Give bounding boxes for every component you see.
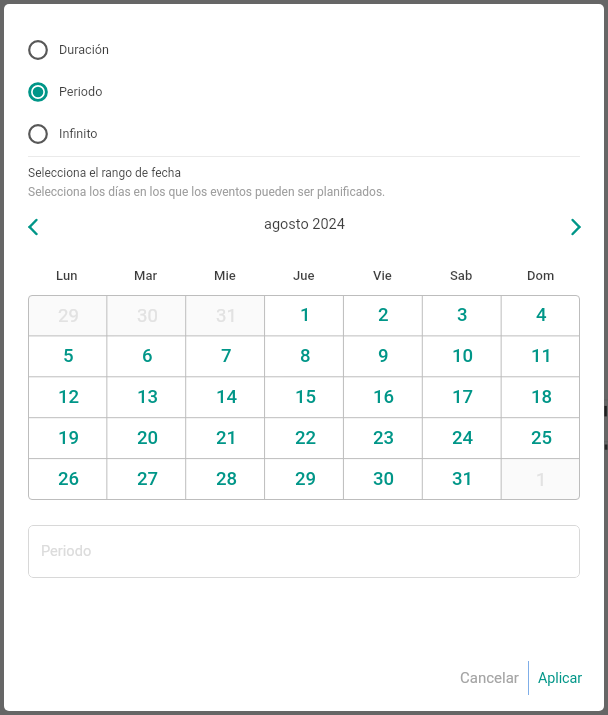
staticText: 14	[216, 386, 238, 408]
staticText: Selecciona los días en los que los event…	[28, 185, 386, 199]
staticText: 28	[216, 468, 238, 490]
staticText: 26	[58, 468, 80, 490]
staticText: 22	[295, 427, 317, 449]
button[interactable]: 15	[265, 377, 344, 418]
button[interactable]: 14	[186, 377, 265, 418]
button[interactable]: Aplicar	[529, 662, 592, 695]
button[interactable]: Mes siguiente	[562, 213, 590, 241]
button[interactable]: 23	[343, 418, 422, 459]
button[interactable]: 25	[501, 418, 580, 459]
button[interactable]: 31	[186, 295, 265, 336]
staticText: Duración	[59, 42, 109, 57]
staticText: Infinito	[59, 126, 98, 141]
button[interactable]: 28	[186, 459, 265, 500]
button[interactable]: 11	[501, 336, 580, 377]
staticText: Periodo	[41, 542, 92, 559]
staticText: 24	[452, 427, 474, 449]
staticText: 29	[58, 305, 79, 327]
staticText: 31	[452, 468, 474, 490]
staticText: Sab	[450, 268, 473, 283]
staticText: 4	[536, 304, 547, 326]
staticText: Periodo	[59, 84, 103, 99]
staticText: 3	[457, 304, 468, 326]
staticText: 23	[373, 427, 395, 449]
button[interactable]: 30	[107, 295, 186, 336]
button[interactable]: 12	[28, 377, 107, 418]
staticText: 31	[216, 305, 237, 327]
staticText: Jue	[293, 268, 315, 283]
button[interactable]: 8	[265, 336, 344, 377]
button[interactable]: 24	[422, 418, 501, 459]
staticText: Lun	[56, 268, 78, 283]
button[interactable]: 16	[343, 377, 422, 418]
button[interactable]: 17	[422, 377, 501, 418]
button[interactable]: 5	[28, 336, 107, 377]
button[interactable]: 4	[501, 295, 580, 336]
staticText: 8	[300, 345, 311, 367]
staticText: 15	[295, 386, 317, 408]
staticText: Cancelar	[460, 669, 519, 687]
button[interactable]: 1	[265, 295, 344, 336]
staticText: 1	[536, 469, 547, 491]
button[interactable]: 27	[107, 459, 186, 500]
staticText: Mie	[214, 268, 236, 283]
button[interactable]: 7	[186, 336, 265, 377]
button[interactable]: Mes anterior	[19, 213, 47, 241]
staticText: 7	[221, 345, 232, 367]
button[interactable]: Infinito	[4, 113, 604, 154]
button[interactable]: Periodo	[4, 71, 604, 112]
staticText: 5	[63, 345, 74, 367]
button[interactable]: Cancelar	[451, 661, 528, 695]
button[interactable]: 10	[422, 336, 501, 377]
button[interactable]: Duración	[4, 29, 604, 70]
button[interactable]: 30	[343, 459, 422, 500]
staticText: 20	[137, 427, 159, 449]
button[interactable]: 21	[186, 418, 265, 459]
button[interactable]: 20	[107, 418, 186, 459]
staticText: 29	[295, 468, 317, 490]
button[interactable]: 31	[422, 459, 501, 500]
button[interactable]: 3	[422, 295, 501, 336]
staticText: 19	[58, 427, 80, 449]
button[interactable]: 26	[28, 459, 107, 500]
button[interactable]: 2	[343, 295, 422, 336]
button[interactable]: 18	[501, 377, 580, 418]
button[interactable]: Periodo	[28, 525, 580, 578]
staticText: 12	[58, 386, 80, 408]
button[interactable]: 19	[28, 418, 107, 459]
staticText: 17	[452, 386, 474, 408]
button[interactable]: 1	[501, 459, 580, 500]
staticText: 11	[531, 345, 553, 367]
button[interactable]: 29	[28, 295, 107, 336]
staticText: 18	[531, 386, 553, 408]
button[interactable]: 9	[343, 336, 422, 377]
staticText: 6	[142, 345, 153, 367]
staticText: agosto 2024	[264, 216, 345, 233]
staticText: 1	[300, 304, 311, 326]
staticText: Dom	[527, 268, 555, 283]
staticText: 30	[137, 305, 158, 327]
staticText: 25	[531, 427, 553, 449]
staticText: Selecciona el rango de fecha	[28, 166, 181, 180]
staticText: 30	[373, 468, 395, 490]
staticText: 27	[137, 468, 159, 490]
staticText: 16	[373, 386, 395, 408]
button[interactable]: 22	[265, 418, 344, 459]
staticText: 9	[378, 345, 389, 367]
staticText: Vie	[373, 268, 392, 283]
staticText: Aplicar	[538, 670, 583, 687]
button[interactable]: 6	[107, 336, 186, 377]
staticText: 10	[452, 345, 474, 367]
staticText: 2	[378, 304, 389, 326]
staticText: Mar	[134, 268, 157, 283]
button[interactable]: 29	[265, 459, 344, 500]
staticText: 21	[216, 427, 238, 449]
staticText: 13	[137, 386, 159, 408]
button[interactable]: 13	[107, 377, 186, 418]
